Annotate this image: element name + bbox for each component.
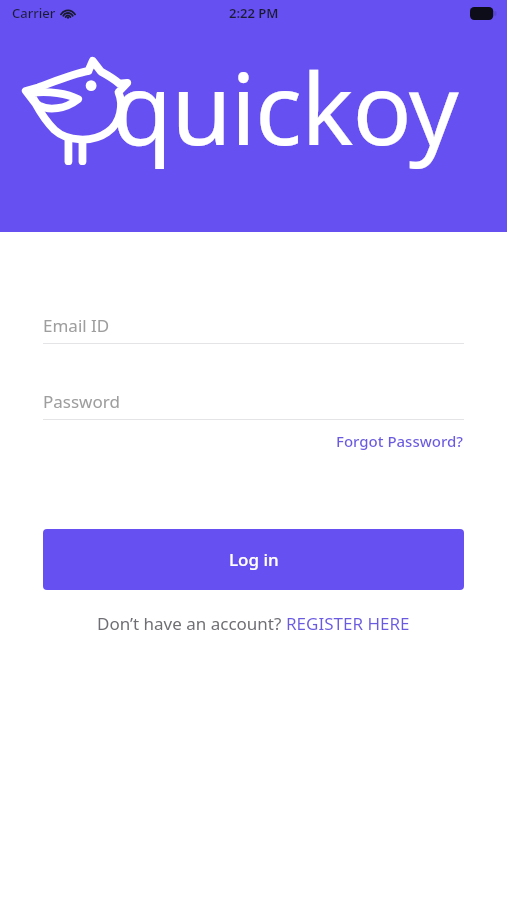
staticText: Carrier (12, 4, 56, 22)
staticText: Email ID (43, 314, 110, 337)
button[interactable]: Forgot Password? (336, 429, 464, 453)
button[interactable]: Email ID (43, 306, 464, 344)
button[interactable]: Password (43, 382, 464, 420)
staticText: Password (43, 390, 120, 413)
staticText: Forgot Password? (336, 431, 464, 451)
staticText: quickoy (112, 40, 458, 173)
staticText: Don’t have an account? (97, 612, 286, 635)
staticText: 2:22 PM (229, 4, 279, 22)
button[interactable]: Log in (43, 529, 464, 590)
button[interactable]: REGISTER HERE (286, 612, 410, 635)
staticText: Log in (229, 548, 279, 571)
staticText: REGISTER HERE (286, 612, 410, 635)
